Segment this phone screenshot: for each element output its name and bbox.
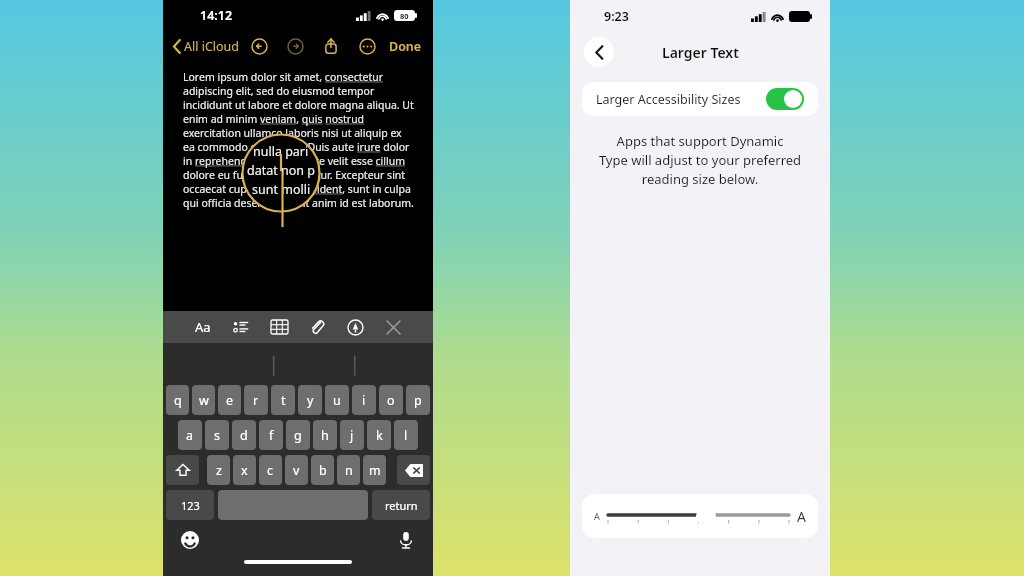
staticText: e	[226, 392, 234, 409]
button[interactable]: Redo	[280, 31, 310, 61]
staticText: dolore eu fugiat nulla pariatur. Excepte…	[183, 168, 406, 182]
button[interactable]: Backspace	[397, 455, 430, 485]
button[interactable]: Larger Accessibility Sizes	[582, 82, 818, 116]
button[interactable]: Checklist	[227, 313, 255, 341]
staticText: a	[186, 427, 194, 444]
button[interactable]: e	[218, 385, 241, 415]
button[interactable]: g	[286, 420, 310, 450]
staticText: return	[385, 498, 418, 513]
button[interactable]: x	[233, 455, 256, 485]
button[interactable]: a	[178, 420, 202, 450]
staticText: 80	[400, 11, 409, 21]
button[interactable]: All iCloud	[171, 38, 242, 55]
button[interactable]: Table	[265, 313, 293, 341]
staticText: y	[307, 392, 314, 409]
button[interactable]: Dictate	[393, 527, 419, 553]
staticText: enim ad minim veniam, quis nostrud	[183, 112, 365, 126]
staticText: exercitation ullamco laboris nisi ut ali…	[183, 126, 402, 140]
button[interactable]: More	[352, 31, 382, 61]
button[interactable]: c	[259, 455, 282, 485]
button[interactable]: w	[192, 385, 215, 415]
staticText: 14:12	[200, 7, 233, 24]
button[interactable]: b	[311, 455, 334, 485]
staticText: f	[269, 427, 274, 444]
staticText: n	[345, 462, 353, 479]
staticText: m	[369, 462, 381, 479]
staticText: All iCloud	[184, 38, 240, 55]
staticText: z	[216, 462, 222, 479]
button[interactable]: m	[363, 455, 386, 485]
staticText: Done	[389, 38, 422, 55]
staticText: A	[797, 507, 806, 526]
button[interactable]: Attach	[303, 313, 331, 341]
staticText: k	[376, 427, 383, 444]
button[interactable]: Done	[386, 38, 425, 55]
button[interactable]: i	[352, 385, 376, 415]
button[interactable]: return	[372, 490, 430, 520]
staticText: A	[594, 510, 600, 522]
staticText: c	[267, 462, 274, 479]
button[interactable]: s	[205, 420, 229, 450]
staticText: Apps that support Dynamic Type will adju…	[582, 132, 818, 188]
staticText: sunt molli	[252, 181, 311, 198]
staticText: h	[321, 427, 329, 444]
staticText: Aa	[195, 318, 211, 336]
staticText: q	[174, 392, 182, 409]
staticText: qui officia deserunt mollit anim id est …	[183, 196, 414, 210]
button[interactable]: f	[259, 420, 283, 450]
button[interactable]: o	[379, 385, 403, 415]
button[interactable]: d	[232, 420, 256, 450]
staticText: u	[333, 392, 341, 409]
staticText: Lorem ipsum dolor sit amet, consectetur	[183, 70, 384, 84]
button[interactable]: Back	[584, 37, 614, 67]
staticText: 123	[181, 498, 200, 513]
button[interactable]: j	[340, 420, 364, 450]
button[interactable]: r	[244, 385, 268, 415]
button[interactable]: v	[285, 455, 308, 485]
staticText: b	[319, 462, 327, 479]
button[interactable]: p	[406, 385, 430, 415]
button[interactable]: k	[367, 420, 391, 450]
staticText: x	[241, 462, 248, 479]
button[interactable]: t	[271, 385, 295, 415]
button[interactable]: h	[313, 420, 337, 450]
staticText: s	[214, 427, 220, 444]
button[interactable]: 123	[166, 490, 214, 520]
button[interactable]: z	[207, 455, 230, 485]
staticText: i	[362, 392, 366, 409]
staticText: datat non p	[247, 162, 315, 179]
button[interactable]: q	[166, 385, 189, 415]
button[interactable]: Emoji	[177, 527, 203, 553]
staticText: g	[294, 427, 302, 444]
staticText: t	[281, 392, 286, 409]
staticText: j	[350, 427, 354, 444]
staticText: in reprehenderit in voluptate velit esse…	[183, 154, 406, 168]
staticText: occaecat cupidatat non proident, sunt in…	[183, 182, 411, 196]
staticText: adipiscing elit, sed do eiusmod tempor	[183, 84, 375, 98]
staticText: l	[404, 427, 408, 444]
staticText: nulla pari	[253, 143, 309, 160]
button[interactable]: Undo	[244, 31, 274, 61]
staticText: d	[240, 427, 248, 444]
staticText: w	[199, 392, 209, 409]
staticText: 9:23	[604, 8, 629, 25]
staticText: p	[414, 392, 422, 409]
staticText: Larger Text	[662, 43, 739, 62]
button[interactable]: y	[298, 385, 322, 415]
staticText: incididunt ut labore et dolore magna ali…	[183, 98, 414, 112]
button[interactable]: Shift	[166, 455, 199, 485]
button[interactable]: u	[325, 385, 349, 415]
staticText: Larger Accessibility Sizes	[596, 91, 741, 108]
staticText: r	[253, 392, 259, 409]
staticText: o	[387, 392, 395, 409]
button[interactable]: l	[394, 420, 418, 450]
button[interactable]: n	[337, 455, 360, 485]
staticText: v	[293, 462, 300, 479]
button[interactable]: Close	[379, 313, 407, 341]
button[interactable]: A	[582, 494, 818, 538]
button[interactable]: Markup	[341, 313, 369, 341]
button[interactable]: Share	[316, 31, 346, 61]
button[interactable]: Aa	[189, 313, 217, 341]
